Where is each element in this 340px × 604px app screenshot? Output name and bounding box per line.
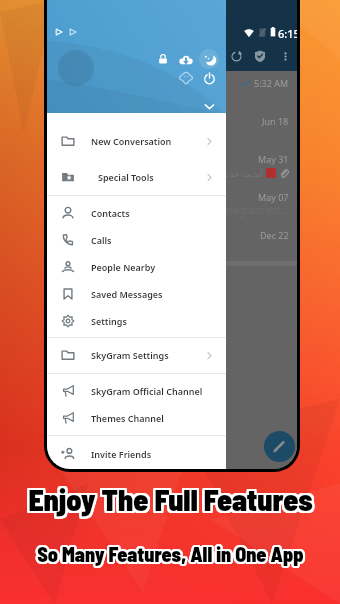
button[interactable]: New message (264, 431, 295, 462)
staticText: So Many Features, All in One App (35, 541, 302, 565)
staticText: SkyGram Settings (91, 349, 169, 361)
staticText: So Many Features, All in One App (38, 541, 305, 565)
staticText: New Conversation (91, 135, 172, 147)
staticText: Enjoy The Full Features (30, 480, 315, 516)
staticText: أبديت جديد (222, 167, 263, 179)
button[interactable]: More options (276, 47, 294, 65)
button[interactable]: Power (200, 69, 218, 87)
staticText: Enjoy The Full Features (26, 480, 311, 516)
staticText: Enjoy The Full Features (28, 483, 313, 519)
staticText: Dec 22 (260, 229, 289, 241)
button[interactable]: May 07 (47, 185, 297, 223)
staticText: Enjoy The Full Features (26, 483, 311, 519)
button[interactable]: Security (251, 47, 269, 65)
staticText: e telegram wit… (213, 203, 289, 217)
button[interactable]: Contacts (47, 200, 226, 226)
staticText: 6:15 (278, 26, 297, 41)
staticText: May 07 (258, 191, 289, 203)
staticText: So Many Features, All in One App (37, 544, 304, 568)
button[interactable]: Invite Friends (47, 440, 226, 468)
staticText: So Many Features, All in One App (36, 541, 303, 565)
staticText: Enjoy The Full Features (28, 479, 313, 515)
button[interactable]: Night mode (199, 49, 219, 69)
staticText: Enjoy The Full Features (26, 482, 311, 518)
button[interactable]: May 31 (47, 147, 297, 185)
button[interactable]: 5:32 AM (47, 71, 297, 109)
staticText: Enjoy The Full Features (26, 481, 311, 517)
staticText: So Many Features, All in One App (39, 541, 306, 565)
button[interactable]: Saved Messages (47, 280, 226, 307)
staticText: So Many Features, All in One App (37, 542, 304, 566)
staticText: Enjoy The Full Features (30, 479, 315, 515)
staticText: Enjoy The Full Features (30, 482, 315, 518)
button[interactable]: Expand accounts (200, 97, 218, 115)
button[interactable]: SkyGram Official Channel (47, 378, 226, 404)
button[interactable]: Special Tools (47, 163, 226, 191)
staticText: Jun 18 (262, 115, 289, 127)
staticText: So Many Features, All in One App (37, 540, 304, 564)
staticText: So Many Features, All in One App (39, 543, 306, 567)
button[interactable]: Jun 18 (47, 109, 297, 147)
staticText: Contacts (91, 207, 130, 219)
button[interactable]: Themes Channel (47, 404, 226, 431)
staticText: Calls (91, 234, 112, 246)
staticText: So Many Features, All in One App (35, 542, 302, 566)
button[interactable]: Passcode lock (154, 50, 172, 68)
staticText: Enjoy The Full Features (30, 481, 315, 517)
staticText: May 31 (258, 153, 289, 165)
staticText: So Many Features, All in One App (38, 544, 305, 568)
button[interactable]: Dec 22 (47, 223, 297, 261)
staticText: So Many Features, All in One App (38, 540, 305, 564)
staticText: Invite Friends (91, 448, 152, 460)
button[interactable]: Settings (47, 307, 226, 334)
staticText: SkyGram Official Channel (91, 385, 203, 397)
staticText: Themes Channel (91, 412, 164, 424)
staticText: Enjoy The Full Features (30, 483, 315, 519)
staticText: So Many Features, All in One App (35, 543, 302, 567)
button[interactable]: New Conversation (47, 127, 226, 155)
button[interactable]: SkyGram Settings (47, 341, 226, 369)
button[interactable]: Profile (58, 50, 94, 86)
staticText: So Many Features, All in One App (36, 540, 303, 564)
button[interactable]: People Nearby (47, 253, 226, 280)
button[interactable]: Calls (47, 226, 226, 253)
staticText: 5:32 AM (254, 77, 289, 89)
staticText: Enjoy The Full Features (29, 479, 314, 515)
staticText: Enjoy The Full Features (26, 479, 311, 515)
button[interactable]: Ghost mode (177, 69, 195, 87)
staticText: So Many Features, All in One App (38, 543, 305, 567)
staticText: Settings (91, 315, 127, 327)
staticText: Enjoy The Full Features (27, 479, 312, 515)
staticText: So Many Features, All in One App (39, 542, 306, 566)
staticText: People Nearby (91, 261, 156, 273)
staticText: Special Tools (98, 171, 154, 183)
staticText: Saved Messages (91, 288, 163, 300)
staticText: Enjoy The Full Features (29, 483, 314, 519)
staticText: Enjoy The Full Features (28, 481, 313, 517)
staticText: Enjoy The Full Features (27, 483, 312, 519)
staticText: So Many Features, All in One App (36, 543, 303, 567)
staticText: So Many Features, All in One App (36, 544, 303, 568)
button[interactable]: Refresh (227, 47, 245, 65)
button[interactable]: Downloads (177, 51, 195, 69)
